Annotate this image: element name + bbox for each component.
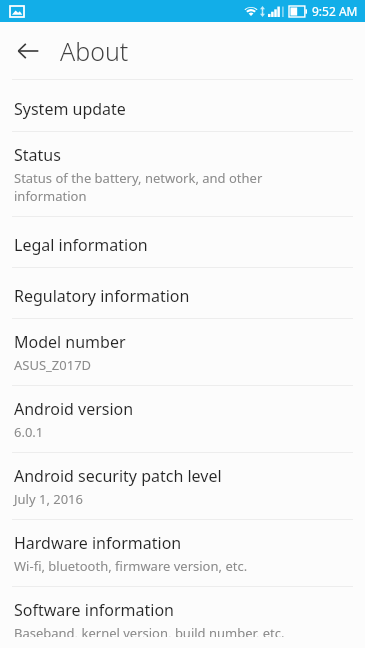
staticText: Baseband, kernel version, build number, … <box>14 624 285 637</box>
button[interactable]: Status <box>0 132 365 216</box>
button[interactable]: Android version <box>0 386 365 452</box>
staticText: About <box>60 34 129 68</box>
button[interactable]: Back <box>8 31 48 71</box>
button[interactable]: Software information <box>0 587 365 648</box>
button[interactable]: Android security patch level <box>0 453 365 519</box>
staticText: ASUS_Z017D <box>14 356 92 374</box>
staticText: Android version <box>14 398 134 420</box>
staticText: Hardware information <box>14 532 182 554</box>
staticText: Software information <box>14 599 174 621</box>
button[interactable]: Legal information <box>0 222 365 267</box>
staticText: Status of the battery, network, and othe… <box>14 169 263 187</box>
staticText: 9:52 AM <box>312 3 358 19</box>
staticText: System update <box>14 98 126 120</box>
staticText: Regulatory information <box>14 285 190 307</box>
staticText: 6.0.1 <box>14 423 44 441</box>
staticText: Legal information <box>14 234 148 256</box>
staticText: information <box>14 187 87 205</box>
button[interactable]: Regulatory information <box>0 273 365 318</box>
staticText: Android security patch level <box>14 465 222 487</box>
staticText: Status <box>14 144 61 166</box>
button[interactable]: Model number <box>0 319 365 385</box>
staticText: Wi-fi, bluetooth, firmware version, etc. <box>14 557 248 575</box>
staticText: Model number <box>14 331 126 353</box>
button[interactable]: System update <box>0 86 365 131</box>
staticText: July 1, 2016 <box>14 490 83 508</box>
button[interactable]: Hardware information <box>0 520 365 586</box>
